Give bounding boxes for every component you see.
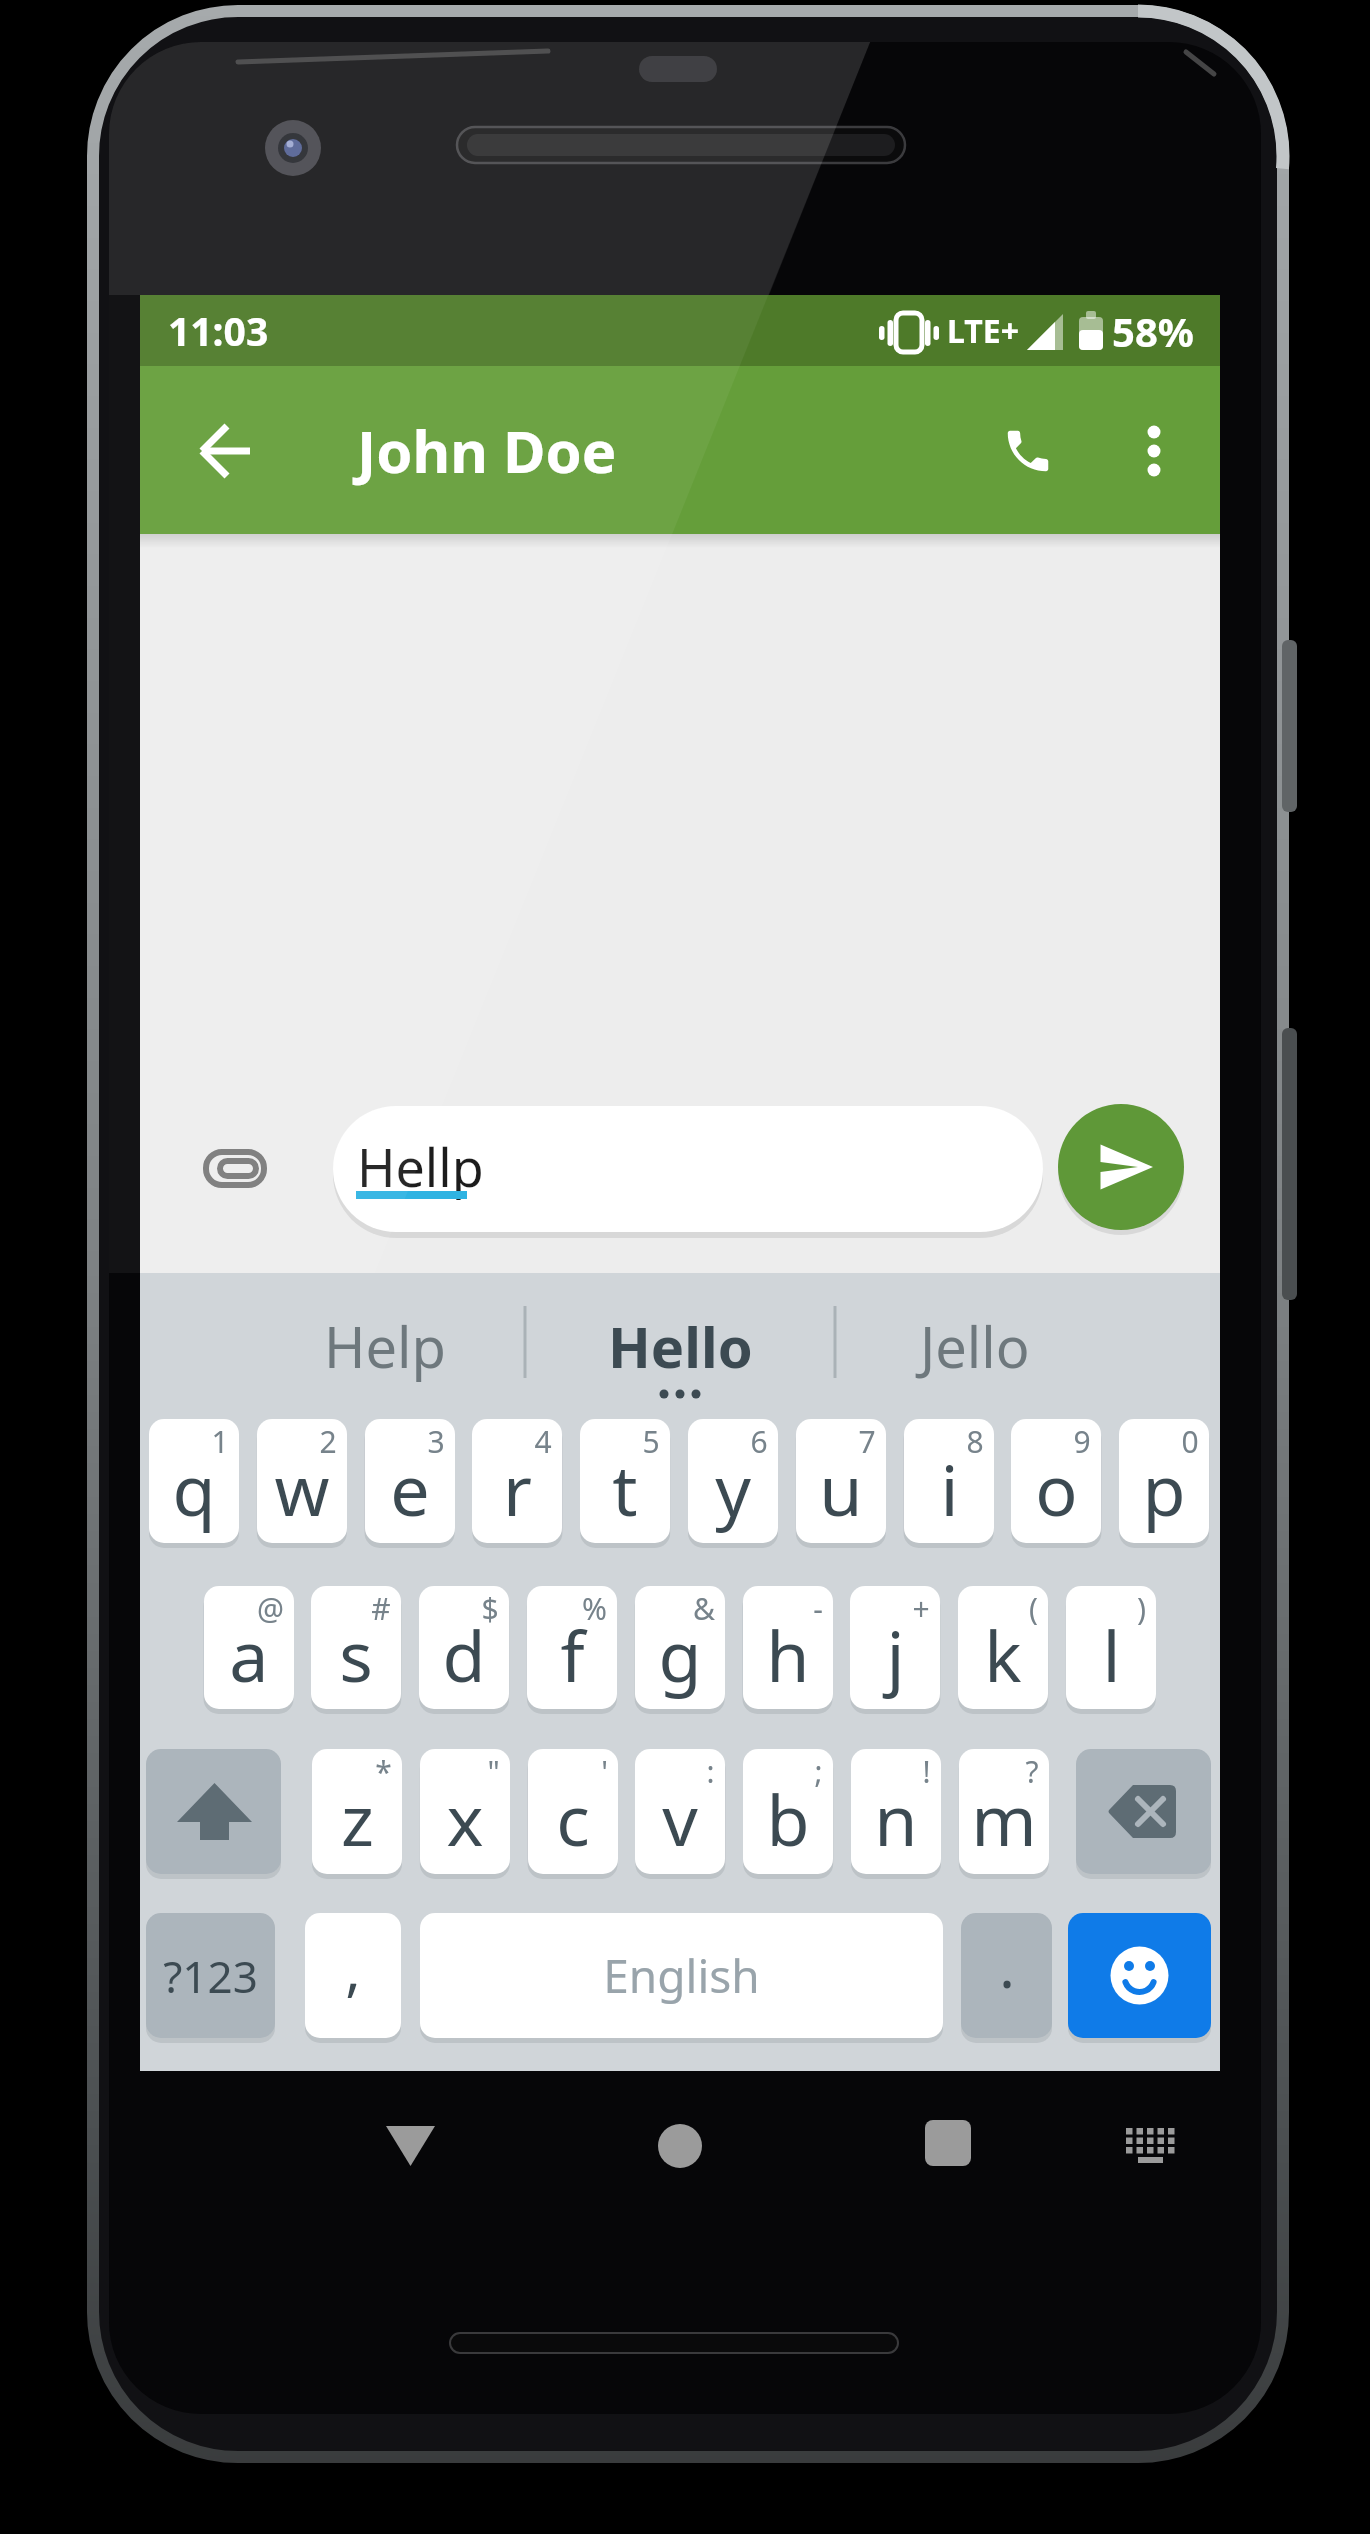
staticText: 8 — [966, 1421, 984, 1462]
button[interactable]: ?123 — [146, 1913, 275, 2038]
staticText: r — [503, 1441, 532, 1536]
staticText: p — [1142, 1441, 1186, 1536]
staticText: 7 — [858, 1421, 876, 1462]
button[interactable] — [146, 1749, 281, 1874]
staticText: d — [442, 1607, 486, 1702]
button[interactable]: j — [850, 1586, 940, 1709]
button[interactable]: d — [419, 1586, 509, 1709]
staticText: LTE+ — [947, 309, 1019, 353]
button[interactable]: o — [1011, 1419, 1101, 1543]
button[interactable]: m — [959, 1749, 1049, 1874]
button[interactable]: q — [149, 1419, 239, 1543]
staticText: g — [658, 1607, 702, 1702]
button[interactable]: i — [904, 1419, 994, 1543]
button[interactable]: g — [635, 1586, 725, 1709]
button[interactable]: English — [420, 1913, 943, 2038]
staticText: 6 — [750, 1421, 768, 1462]
staticText: o — [1035, 1441, 1078, 1536]
staticText: 0 — [1181, 1421, 1199, 1462]
staticText: n — [874, 1771, 918, 1866]
button[interactable]: f — [527, 1586, 617, 1709]
staticText: 1 — [211, 1421, 229, 1462]
button[interactable] — [1068, 1913, 1211, 2038]
button[interactable]: b — [743, 1749, 833, 1874]
staticText: 2 — [319, 1421, 337, 1462]
button[interactable]: l — [1066, 1586, 1156, 1709]
button[interactable]: k — [958, 1586, 1048, 1709]
staticText: f — [560, 1607, 585, 1702]
staticText: z — [341, 1771, 374, 1866]
button[interactable]: u — [796, 1419, 886, 1543]
button[interactable]: t — [580, 1419, 670, 1543]
staticText: s — [339, 1607, 373, 1702]
staticText: " — [487, 1751, 500, 1792]
staticText: a — [229, 1607, 269, 1702]
staticText: ( — [1029, 1588, 1038, 1629]
staticText: ; — [814, 1751, 823, 1792]
staticText: ) — [1137, 1588, 1146, 1629]
staticText: & — [693, 1588, 715, 1629]
staticText: c — [556, 1771, 590, 1866]
staticText: * — [375, 1751, 392, 1792]
staticText: 58% — [1112, 304, 1194, 358]
staticText: Hellp — [357, 1131, 484, 1202]
staticText: . — [999, 1926, 1015, 2005]
staticText: j — [886, 1607, 905, 1702]
staticText: m — [971, 1771, 1037, 1866]
button[interactable]: r — [472, 1419, 562, 1543]
staticText: i — [940, 1441, 959, 1536]
staticText: h — [766, 1607, 810, 1702]
staticText: k — [984, 1607, 1022, 1702]
staticText: , — [345, 1928, 361, 2007]
button[interactable]: y — [688, 1419, 778, 1543]
staticText: Hello — [608, 1308, 753, 1384]
staticText: ' — [601, 1751, 608, 1792]
button[interactable]: h — [743, 1586, 833, 1709]
staticText: ? — [1025, 1751, 1039, 1792]
staticText: John Doe — [357, 411, 617, 490]
staticText: English — [603, 1944, 760, 2007]
button[interactable]: s — [311, 1586, 401, 1709]
staticText: t — [612, 1441, 638, 1536]
button[interactable]: z — [312, 1749, 402, 1874]
staticText: v — [662, 1771, 698, 1866]
staticText: q — [172, 1441, 216, 1536]
button[interactable]: c — [528, 1749, 618, 1874]
button[interactable]: n — [851, 1749, 941, 1874]
staticText: 4 — [534, 1421, 552, 1462]
button[interactable]: a — [204, 1586, 294, 1709]
staticText: Jello — [920, 1308, 1030, 1384]
staticText: b — [766, 1771, 810, 1866]
button[interactable]: v — [635, 1749, 725, 1874]
staticText: 11:03 — [168, 304, 269, 357]
staticText: Help — [324, 1308, 446, 1384]
staticText: y — [715, 1441, 751, 1536]
button[interactable] — [333, 1106, 1043, 1232]
button[interactable]: w — [257, 1419, 347, 1543]
staticText: 5 — [642, 1421, 660, 1462]
staticText: @ — [257, 1588, 284, 1629]
button[interactable]: , — [305, 1913, 401, 2038]
staticText: x — [446, 1771, 484, 1866]
button[interactable]: x — [420, 1749, 510, 1874]
button[interactable]: . — [961, 1913, 1052, 2038]
button[interactable]: e — [365, 1419, 455, 1543]
staticText: # — [371, 1588, 391, 1629]
staticText: 9 — [1073, 1421, 1091, 1462]
staticText: - — [813, 1588, 823, 1629]
button[interactable]: p — [1119, 1419, 1209, 1543]
staticText: 3 — [427, 1421, 445, 1462]
staticText: ?123 — [163, 1946, 258, 2006]
staticText: e — [390, 1441, 430, 1536]
button[interactable] — [1076, 1749, 1211, 1874]
staticText: ! — [922, 1751, 931, 1792]
staticText: w — [274, 1441, 330, 1536]
staticText: % — [582, 1588, 607, 1629]
staticText: u — [819, 1441, 863, 1536]
staticText: l — [1102, 1607, 1121, 1702]
staticText: $ — [481, 1588, 499, 1629]
staticText: : — [706, 1751, 715, 1792]
staticText: + — [912, 1588, 930, 1629]
button[interactable] — [1058, 1104, 1184, 1230]
